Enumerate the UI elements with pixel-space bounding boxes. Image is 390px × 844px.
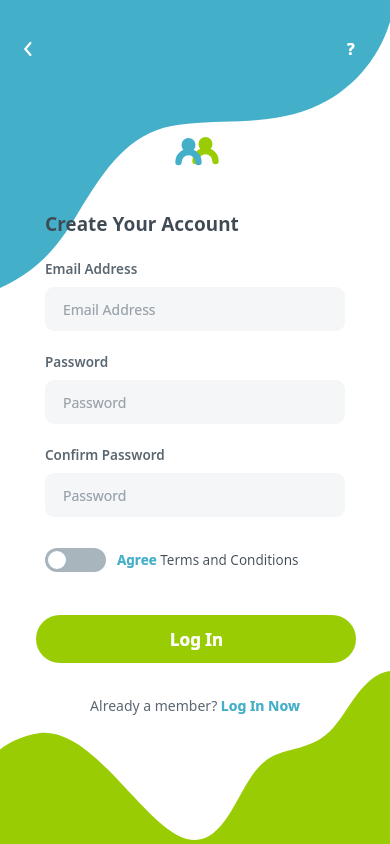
button[interactable]: Log In bbox=[36, 615, 356, 663]
staticText: Email Address bbox=[63, 300, 156, 319]
button[interactable]: Help bbox=[337, 35, 365, 63]
button[interactable]: Password bbox=[45, 380, 345, 424]
staticText: Password bbox=[45, 353, 109, 371]
button[interactable]: Already a member? Log In Now bbox=[0, 693, 390, 717]
button[interactable]: Email Address bbox=[45, 287, 345, 331]
staticText: Agree Terms and Conditions bbox=[117, 551, 299, 569]
staticText: Password bbox=[63, 393, 127, 412]
staticText: ? bbox=[347, 38, 355, 60]
staticText: Create Your Account bbox=[45, 211, 239, 237]
button[interactable]: Agree to terms toggle bbox=[45, 548, 106, 572]
staticText: Already a member? Log In Now bbox=[90, 696, 300, 715]
button[interactable]: Back bbox=[8, 29, 48, 69]
staticText: Log In bbox=[170, 628, 223, 651]
button[interactable]: Password bbox=[45, 473, 345, 517]
staticText: Confirm Password bbox=[45, 446, 165, 464]
staticText: Email Address bbox=[45, 260, 138, 278]
staticText: Password bbox=[63, 486, 127, 505]
